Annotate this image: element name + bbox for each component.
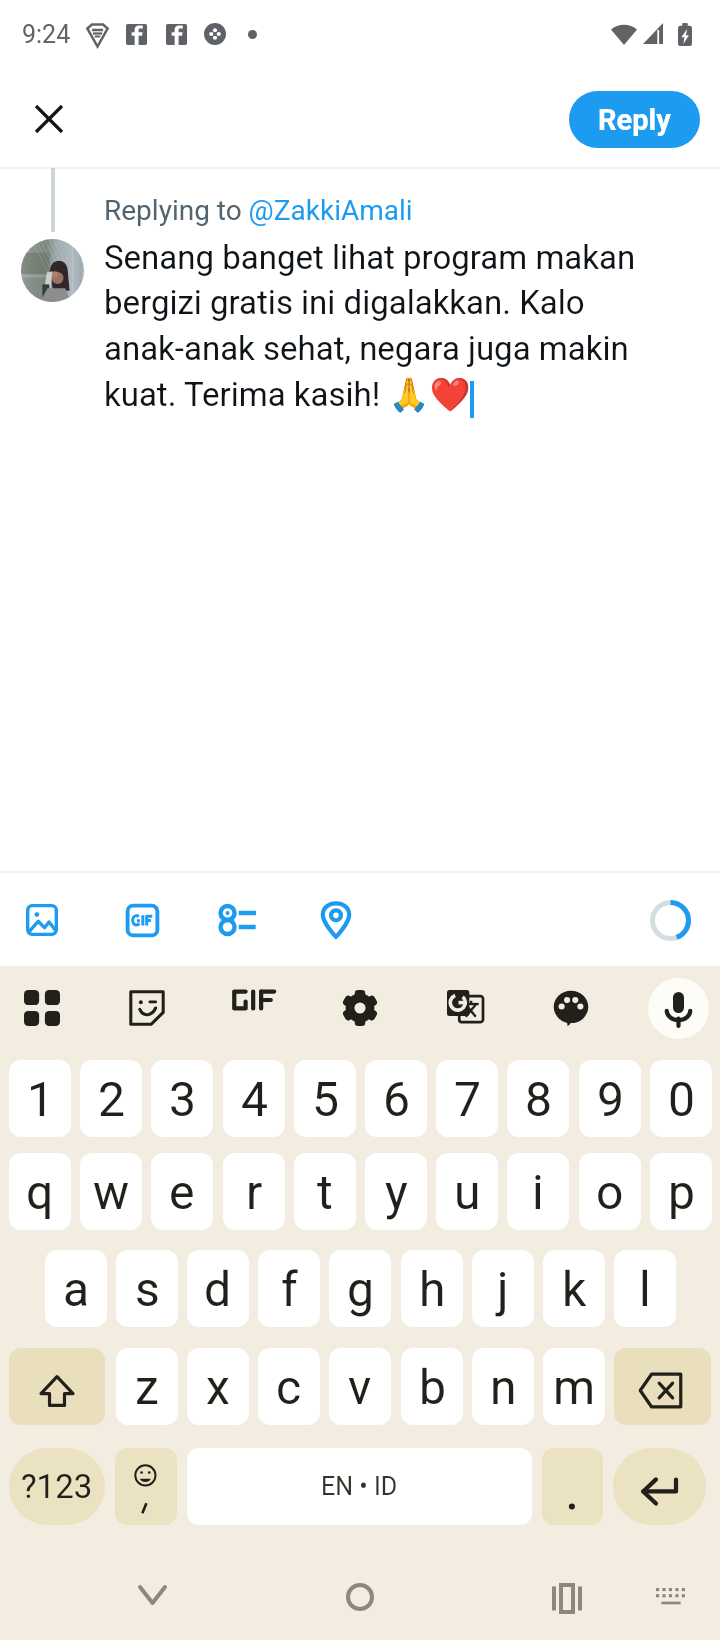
staticText: t xyxy=(317,1164,333,1220)
staticText: 0 xyxy=(668,1071,695,1127)
staticText: 3 xyxy=(169,1071,196,1127)
button[interactable]: 4 xyxy=(223,1060,285,1137)
staticText: u xyxy=(454,1164,481,1220)
button[interactable]: 5 xyxy=(294,1060,356,1137)
button[interactable]: s xyxy=(116,1250,178,1327)
staticText: h xyxy=(419,1261,446,1317)
button[interactable]: t xyxy=(294,1153,356,1230)
staticText: 5 xyxy=(312,1071,339,1127)
button[interactable]: Hide keyboard xyxy=(641,1569,701,1629)
staticText: a xyxy=(63,1261,90,1317)
button[interactable]: 2 xyxy=(80,1060,142,1137)
staticText: j xyxy=(497,1261,509,1317)
staticText: 7 xyxy=(454,1071,481,1127)
button[interactable]: x xyxy=(187,1348,249,1425)
staticText: p xyxy=(668,1164,695,1220)
button[interactable]: Recents xyxy=(537,1568,597,1628)
button[interactable]: j xyxy=(472,1250,534,1327)
button[interactable]: d xyxy=(187,1250,249,1327)
button[interactable]: l xyxy=(614,1250,676,1327)
button[interactable]: p xyxy=(650,1153,712,1230)
button[interactable]: 8 xyxy=(507,1060,569,1137)
staticText: 9 xyxy=(597,1071,624,1127)
staticText: Senang banget lihat program makan bergiz… xyxy=(104,238,664,414)
staticText: g xyxy=(347,1261,374,1317)
staticText: e xyxy=(169,1164,195,1220)
button[interactable]: Period xyxy=(542,1448,603,1525)
staticText: q xyxy=(26,1164,54,1220)
button[interactable]: c xyxy=(258,1348,320,1425)
staticText: k xyxy=(562,1261,587,1317)
staticText: 8 xyxy=(525,1071,552,1127)
staticText: 6 xyxy=(383,1071,410,1127)
button[interactable]: h xyxy=(401,1250,463,1327)
staticText: c xyxy=(276,1359,302,1415)
button[interactable]: r xyxy=(223,1153,285,1230)
button[interactable]: 9 xyxy=(579,1060,641,1137)
button[interactable]: q xyxy=(9,1153,71,1230)
button[interactable]: Close xyxy=(17,87,80,150)
staticText: b xyxy=(419,1359,446,1415)
button[interactable]: Reply xyxy=(569,91,700,148)
button[interactable]: Home xyxy=(330,1567,390,1627)
button[interactable]: Theme xyxy=(553,990,589,1026)
button[interactable]: i xyxy=(507,1153,569,1230)
button[interactable]: Add location xyxy=(305,889,367,951)
staticText: v xyxy=(348,1359,372,1415)
button[interactable]: v xyxy=(329,1348,391,1425)
button[interactable]: w xyxy=(80,1153,142,1230)
staticText: s xyxy=(135,1261,160,1317)
button[interactable]: 3 xyxy=(151,1060,213,1137)
button[interactable]: Add GIF xyxy=(111,889,173,951)
button[interactable]: Apps xyxy=(24,990,60,1026)
button[interactable]: u xyxy=(436,1153,498,1230)
staticText: 9:24 xyxy=(22,20,71,49)
button[interactable]: Emoji xyxy=(115,1448,177,1525)
button[interactable]: 1 xyxy=(9,1060,71,1137)
button[interactable]: GIF keyboard xyxy=(233,990,275,1010)
button[interactable]: Stickers xyxy=(129,990,165,1026)
staticText: y xyxy=(385,1164,408,1220)
button[interactable]: Shift xyxy=(9,1348,105,1425)
button[interactable]: 6 xyxy=(365,1060,427,1137)
staticText: f xyxy=(281,1261,298,1317)
staticText: m xyxy=(553,1359,596,1415)
staticText: o xyxy=(596,1164,624,1220)
button[interactable]: Backspace xyxy=(614,1348,711,1425)
button[interactable]: 0 xyxy=(650,1060,712,1137)
button[interactable]: f xyxy=(258,1250,320,1327)
staticText: ?123 xyxy=(21,1467,93,1506)
button[interactable]: Translate xyxy=(447,990,483,1026)
staticText: l xyxy=(639,1261,651,1317)
staticText: d xyxy=(204,1261,232,1317)
button[interactable]: b xyxy=(401,1348,463,1425)
button[interactable]: z xyxy=(116,1348,178,1425)
staticText: 1 xyxy=(27,1071,54,1127)
staticText: x xyxy=(206,1359,230,1415)
button[interactable]: k xyxy=(543,1250,605,1327)
button[interactable]: Symbols xyxy=(9,1448,105,1525)
staticText: w xyxy=(93,1164,130,1220)
button[interactable]: 7 xyxy=(436,1060,498,1137)
staticText: i xyxy=(532,1164,544,1220)
button[interactable]: y xyxy=(365,1153,427,1230)
staticText: 4 xyxy=(241,1071,268,1127)
button[interactable]: g xyxy=(329,1250,391,1327)
button[interactable]: Back xyxy=(122,1565,182,1625)
button[interactable]: a xyxy=(45,1250,107,1327)
button[interactable]: n xyxy=(472,1348,534,1425)
button[interactable]: Voice input xyxy=(648,978,709,1039)
button[interactable]: m xyxy=(543,1348,605,1425)
staticText: Replying to @ZakkiAmali xyxy=(104,194,413,227)
staticText: r xyxy=(246,1164,263,1220)
button[interactable]: o xyxy=(579,1153,641,1230)
staticText: z xyxy=(135,1359,159,1415)
button[interactable]: Space xyxy=(187,1448,532,1525)
button[interactable]: Enter xyxy=(613,1448,706,1525)
button[interactable]: Profile picture xyxy=(21,239,84,302)
button[interactable]: Settings xyxy=(342,990,378,1026)
staticText: 2 xyxy=(98,1071,125,1127)
button[interactable]: Add photo xyxy=(11,889,73,951)
button[interactable]: e xyxy=(151,1153,213,1230)
button[interactable]: Add poll xyxy=(207,889,269,951)
